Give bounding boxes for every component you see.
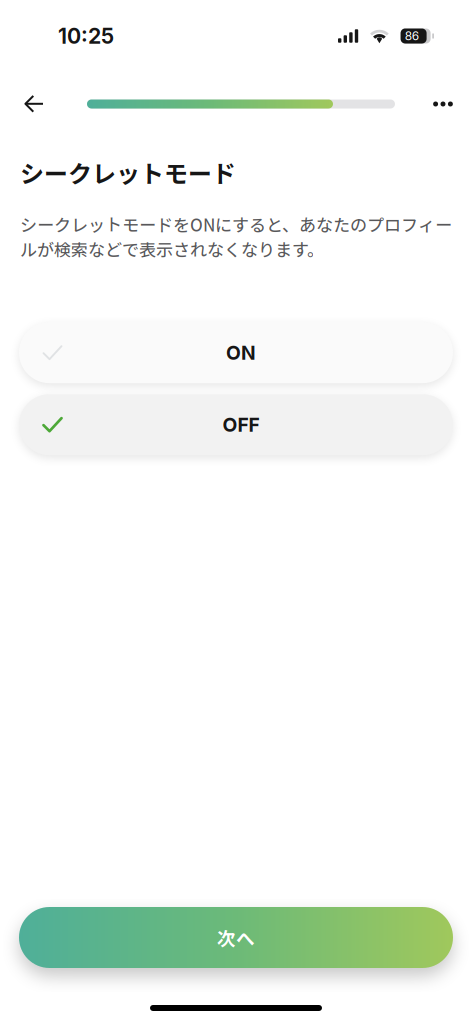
button[interactable]: ON — [19, 322, 453, 383]
staticText: OFF — [222, 413, 259, 436]
button[interactable]: Back — [12, 82, 56, 126]
staticText: ON — [226, 341, 256, 364]
staticText: 10:25 — [58, 23, 114, 49]
button[interactable]: OFF — [19, 394, 453, 455]
staticText: シークレットモード — [20, 155, 236, 190]
staticText: シークレットモードをONにすると、あなたのプロフィールが検索などで表示されなくな… — [20, 212, 452, 261]
staticText: 86 — [405, 29, 419, 43]
staticText: 次へ — [217, 924, 255, 951]
button[interactable]: More options — [421, 82, 465, 126]
button[interactable]: 次へ — [19, 907, 453, 968]
